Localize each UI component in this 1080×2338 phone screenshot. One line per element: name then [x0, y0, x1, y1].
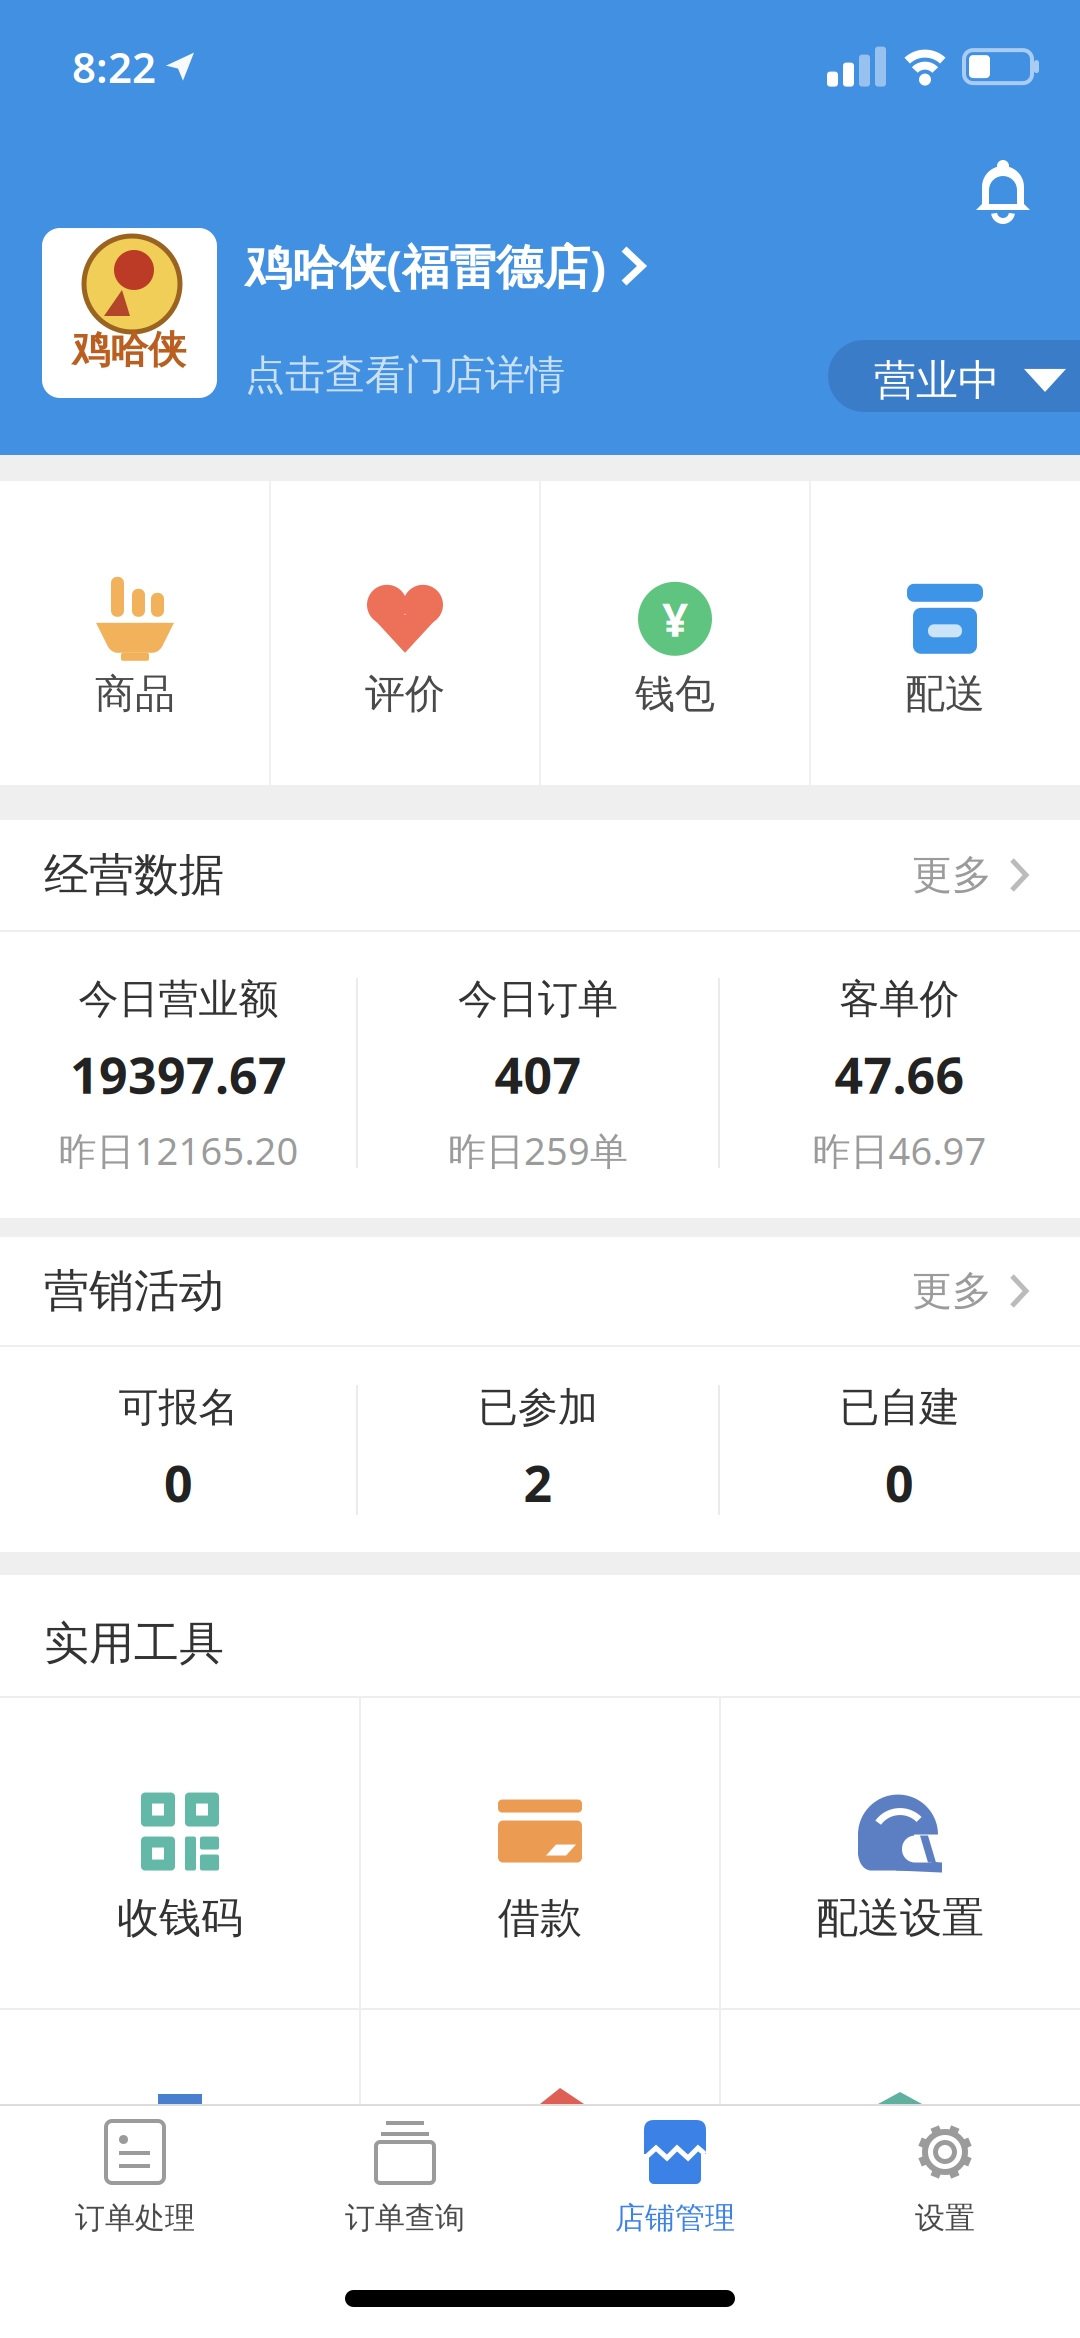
- staticText: 营业中: [874, 354, 1000, 407]
- staticText: 借款: [498, 1891, 582, 1944]
- staticText: 已参加: [478, 1382, 598, 1433]
- staticText: 实用工具: [44, 1615, 224, 1672]
- staticText: 今日订单: [458, 974, 618, 1024]
- button[interactable]: 营业状态: [0, 0, 290, 72]
- staticText: 更多: [912, 850, 992, 900]
- button[interactable]: 配送设置: [720, 1698, 1080, 2008]
- staticText: 昨日12165.20: [58, 1124, 298, 1176]
- staticText: 设置: [915, 2199, 975, 2237]
- staticText: 昨日46.97: [812, 1124, 986, 1176]
- staticText: 已自建: [839, 1382, 959, 1433]
- staticText: 19397.67: [70, 1040, 287, 1108]
- staticText: 8:22: [72, 38, 156, 95]
- button[interactable]: 设置: [810, 2106, 1080, 2338]
- button[interactable]: ¥: [540, 481, 810, 785]
- staticText: 营销活动: [44, 1263, 224, 1319]
- staticText: ¥: [662, 587, 688, 650]
- staticText: 收钱码: [117, 1891, 243, 1944]
- staticText: 评价: [365, 669, 445, 719]
- staticText: 鸡哈侠(福雷德店): [245, 234, 606, 298]
- staticText: 配送: [905, 669, 985, 719]
- staticText: 昨日259单: [448, 1124, 628, 1176]
- staticText: 钱包: [635, 669, 715, 719]
- staticText: 订单查询: [345, 2199, 465, 2237]
- button[interactable]: 更多: [912, 850, 1030, 900]
- staticText: 407: [494, 1040, 581, 1108]
- staticText: 店铺管理: [615, 2199, 735, 2237]
- button[interactable]: 店铺管理: [540, 2106, 810, 2338]
- staticText: 配送设置: [816, 1891, 984, 1944]
- staticText: 可报名: [118, 1382, 238, 1433]
- staticText: 今日营业额: [78, 974, 278, 1024]
- staticText: 2: [523, 1449, 552, 1517]
- staticText: 鸡哈侠: [72, 326, 186, 374]
- button[interactable]: 门店头像: [0, 0, 175, 170]
- button[interactable]: 借款: [360, 1698, 720, 2008]
- staticText: 47.66: [834, 1040, 964, 1108]
- button[interactable]: 订单处理: [0, 2106, 270, 2338]
- staticText: 客单价: [839, 974, 959, 1024]
- button[interactable]: 门店详情: [0, 0, 401, 64]
- staticText: 经营数据: [44, 847, 224, 903]
- button[interactable]: 收钱码: [0, 1698, 360, 2008]
- button[interactable]: 更多: [912, 1266, 1030, 1316]
- staticText: 更多: [912, 1266, 992, 1316]
- button[interactable]: 评价: [270, 481, 540, 785]
- staticText: 0: [164, 1449, 193, 1517]
- staticText: 商品: [95, 669, 175, 719]
- staticText: 点击查看门店详情: [245, 350, 565, 400]
- button[interactable]: 商品: [0, 481, 270, 785]
- button[interactable]: 配送: [810, 481, 1080, 785]
- staticText: 0: [885, 1449, 914, 1517]
- staticText: 订单处理: [75, 2199, 195, 2237]
- button[interactable]: 订单查询: [270, 2106, 540, 2338]
